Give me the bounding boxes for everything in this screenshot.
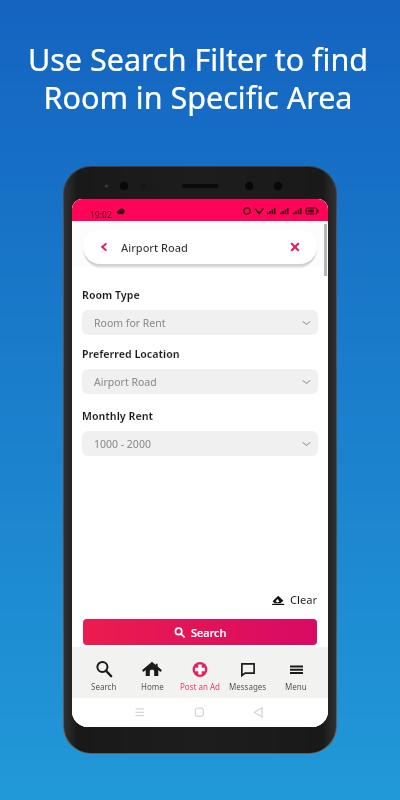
staticText: Home bbox=[141, 681, 164, 692]
button[interactable]: Search bbox=[80, 647, 128, 698]
button[interactable]: Room for Rent bbox=[82, 310, 318, 335]
staticText: Room Type bbox=[82, 288, 140, 302]
staticText: Room for Rent bbox=[94, 316, 166, 330]
staticText: Airport Road bbox=[121, 240, 188, 255]
staticText: Post an Ad bbox=[180, 681, 221, 692]
button[interactable]: Airport Road bbox=[82, 369, 318, 394]
button[interactable]: Back bbox=[83, 230, 121, 264]
staticText: Menu bbox=[285, 681, 307, 692]
button[interactable]: Menu bbox=[272, 647, 320, 698]
staticText: Airport Road bbox=[94, 375, 157, 389]
staticText: Search bbox=[191, 625, 227, 640]
button[interactable]: Messages bbox=[224, 647, 272, 698]
staticText: Preferred Location bbox=[82, 347, 180, 361]
button[interactable]: Clear bbox=[272, 591, 318, 607]
button[interactable]: Home bbox=[128, 647, 176, 698]
button[interactable]: 1000 - 2000 bbox=[82, 431, 318, 456]
staticText: Search bbox=[91, 681, 117, 692]
staticText: 19:02 bbox=[90, 209, 112, 221]
staticText: Clear bbox=[290, 592, 318, 607]
button[interactable]: Back bbox=[83, 230, 317, 264]
button[interactable]: Clear search text bbox=[272, 230, 317, 264]
staticText: Monthly Rent bbox=[82, 409, 154, 423]
button[interactable]: Search bbox=[83, 619, 317, 645]
staticText: Messages bbox=[229, 681, 267, 692]
button[interactable]: Post an Ad bbox=[176, 647, 224, 698]
staticText: 1000 - 2000 bbox=[94, 437, 151, 451]
staticText: Use Search Filter to find Room in Specif… bbox=[0, 38, 398, 118]
